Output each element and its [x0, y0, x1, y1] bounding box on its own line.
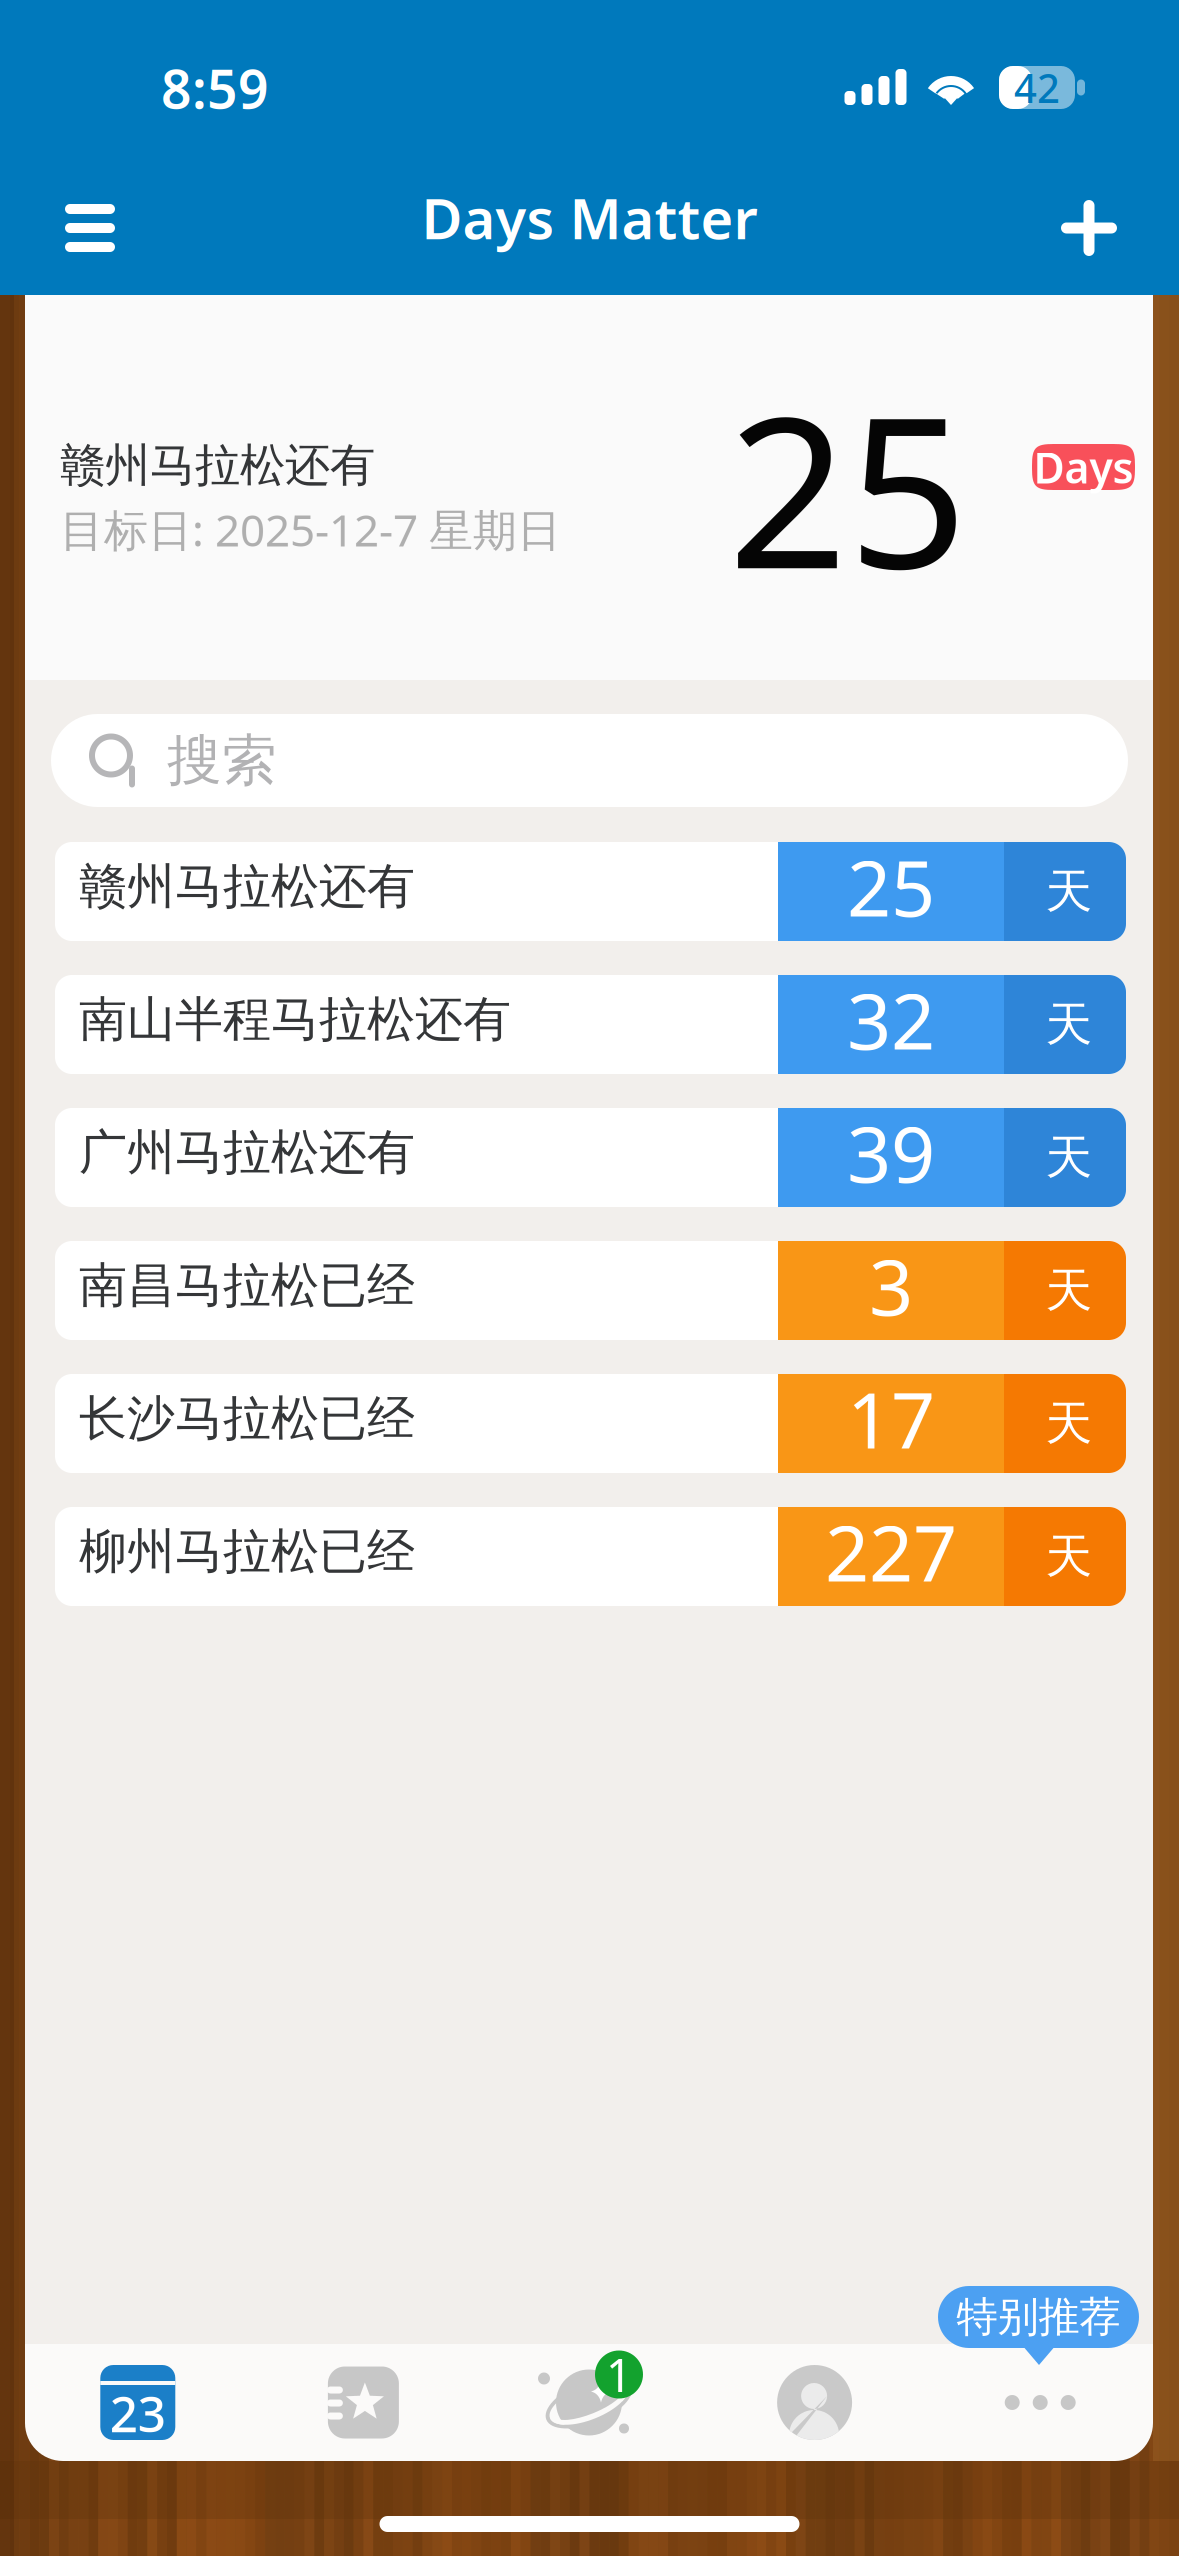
- staticText: 柳州马拉松已经: [79, 1522, 415, 1581]
- staticText: 目标日: 2025-12-7 星期日: [60, 500, 561, 558]
- staticText: 天: [1045, 996, 1092, 1053]
- button[interactable]: More: [927, 2344, 1153, 2461]
- button[interactable]: 搜索: [51, 714, 1128, 807]
- staticText: 天: [1045, 1129, 1092, 1186]
- staticText: 赣州马拉松还有: [79, 857, 415, 916]
- button[interactable]: Profile: [702, 2344, 927, 2461]
- staticText: Days Matter: [421, 180, 757, 255]
- staticText: 25: [847, 835, 935, 938]
- staticText: 32: [847, 968, 935, 1071]
- button[interactable]: Menu: [35, 173, 145, 283]
- staticText: 特别推荐: [956, 2292, 1120, 2342]
- staticText: 天: [1045, 1395, 1092, 1452]
- staticText: 3: [869, 1234, 913, 1337]
- staticText: 南昌马拉松已经: [79, 1256, 415, 1315]
- staticText: 广州马拉松还有: [79, 1123, 415, 1182]
- staticText: 23: [110, 2380, 166, 2446]
- staticText: 8:59: [161, 53, 269, 123]
- staticText: 42: [1014, 61, 1060, 114]
- staticText: 1: [606, 2344, 632, 2405]
- staticText: 赣州马拉松还有: [60, 437, 375, 493]
- button[interactable]: Discover: [476, 2344, 702, 2461]
- staticText: 搜索: [167, 727, 277, 794]
- staticText: Days: [1033, 439, 1133, 495]
- button[interactable]: Countdowns: [25, 2344, 251, 2461]
- staticText: 长沙马拉松已经: [79, 1389, 415, 1448]
- staticText: 17: [847, 1367, 935, 1470]
- staticText: 25: [728, 348, 968, 626]
- staticText: 南山半程马拉松还有: [79, 990, 511, 1049]
- staticText: 天: [1045, 1528, 1092, 1585]
- staticText: 天: [1045, 1262, 1092, 1319]
- button[interactable]: 广州马拉松还有: [55, 1108, 1126, 1207]
- button[interactable]: 赣州马拉松还有: [55, 842, 1126, 941]
- button[interactable]: 柳州马拉松已经: [55, 1507, 1126, 1606]
- button[interactable]: 南昌马拉松已经: [55, 1241, 1126, 1340]
- staticText: 227: [825, 1500, 957, 1603]
- button[interactable]: Add: [1034, 173, 1144, 283]
- button[interactable]: 南山半程马拉松还有: [55, 975, 1126, 1074]
- staticText: 39: [847, 1101, 935, 1204]
- staticText: 天: [1045, 863, 1092, 920]
- button[interactable]: 长沙马拉松已经: [55, 1374, 1126, 1473]
- button[interactable]: Collections: [251, 2344, 476, 2461]
